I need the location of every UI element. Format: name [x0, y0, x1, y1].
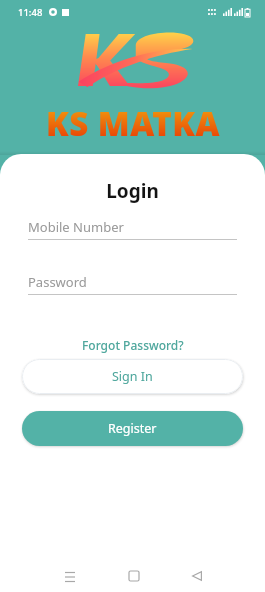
staticText: Register [108, 420, 157, 437]
staticText: Password [28, 273, 87, 291]
staticText: 11:48 [18, 6, 43, 19]
staticText: Sign In [112, 368, 153, 385]
staticText: KS MATKA [46, 101, 220, 146]
staticText: Forgot Password? [82, 337, 184, 353]
staticText: Mobile Number [28, 218, 124, 236]
button[interactable]: Recent apps [52, 558, 88, 592]
button[interactable]: Forgot Password? [72, 334, 194, 356]
button[interactable]: Home [116, 558, 152, 592]
staticText: Login [0, 178, 265, 204]
button[interactable]: Sign In [22, 359, 243, 394]
button[interactable]: Register [22, 411, 243, 446]
button[interactable]: Back [179, 558, 215, 592]
